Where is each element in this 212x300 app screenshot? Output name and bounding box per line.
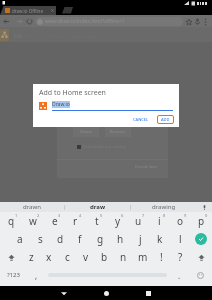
staticText: . [178,270,181,281]
button[interactable]: z [22,248,40,266]
button[interactable]: . [170,266,188,284]
button[interactable]: k [150,230,170,248]
staticText: l [179,232,182,246]
button[interactable]: Bookmark [184,17,193,26]
button[interactable]: e [44,212,65,230]
staticText: 3 [58,213,61,218]
staticText: Browser [110,129,126,134]
button[interactable]: f [70,230,90,248]
button[interactable]: Decide later [135,164,158,169]
button[interactable]: h [110,230,130,248]
button[interactable]: Recents [127,286,169,300]
staticText: b [101,250,108,264]
button[interactable]: u [128,212,149,230]
button[interactable]: Device [73,112,99,137]
staticText: p [198,214,205,228]
button[interactable]: Voice input [196,202,212,212]
staticText: h [117,232,124,246]
staticText: c [65,250,70,264]
staticText: www.draw.io/index.html?offline=1 [45,18,125,25]
button[interactable]: ?123 [0,266,27,284]
button[interactable]: j [130,230,150,248]
staticText: 4 [79,213,82,218]
staticText: 2 [37,213,40,218]
button[interactable]: c [58,248,76,266]
button[interactable]: x [40,248,58,266]
button[interactable]: Shift [0,248,22,266]
staticText: Decide later [135,164,158,169]
button[interactable]: b [95,248,114,266]
button[interactable]: Space [45,266,170,284]
button[interactable]: , [27,266,45,284]
button[interactable]: l [170,230,190,248]
button[interactable]: New tab [61,6,74,15]
button[interactable]: CANCEL [130,115,152,124]
button[interactable]: Enter [190,230,212,248]
button[interactable]: d [50,230,70,248]
button[interactable]: Browser [105,112,131,137]
staticText: CANCEL [133,117,149,122]
button[interactable]: v [76,248,95,266]
staticText: Draw.io [52,101,70,108]
staticText: o [177,214,184,228]
button[interactable]: Back [43,286,85,300]
button[interactable]: draw [65,202,130,212]
staticText: drawn [23,203,41,211]
button[interactable]: m [133,248,152,266]
button[interactable]: a [9,230,30,248]
staticText: m [138,250,148,264]
button[interactable]: ! [152,248,171,266]
button[interactable]: Forward [15,17,24,26]
button[interactable]: drawn [0,202,64,212]
staticText: draw.io Offline [12,8,43,14]
staticText: v [83,250,89,264]
button[interactable]: Emoji [188,266,212,284]
staticText: g [97,232,104,246]
staticText: y [115,214,121,228]
button[interactable]: Reload [25,17,34,26]
button[interactable]: n [114,248,133,266]
button[interactable]: ADD [157,115,174,124]
staticText: w [29,214,37,228]
button[interactable]: w [22,212,44,230]
button[interactable]: r [65,212,86,230]
button[interactable]: draw.io Offline [0,6,56,15]
button[interactable]: Backspace [190,248,212,266]
staticText: Add to Home screen [39,88,106,98]
staticText: 5 [100,213,103,218]
staticText: 6 [121,213,124,218]
button[interactable]: Voice search [193,17,202,26]
button[interactable]: q [0,212,22,230]
staticText: f [78,232,82,246]
button[interactable]: Home [85,286,127,300]
staticText: d [57,232,64,246]
button[interactable]: y [107,212,128,230]
button[interactable]: drawing [131,202,196,212]
button[interactable]: o [170,212,191,230]
button[interactable]: g [90,230,110,248]
staticText: draw [90,203,106,211]
button[interactable]: t [86,212,107,230]
staticText: u [135,214,142,228]
staticText: j [139,232,142,246]
staticText: s [38,232,43,246]
button[interactable]: ? [171,248,190,266]
button[interactable]: p [191,212,212,230]
staticText: ? [178,250,183,264]
staticText: t [95,214,99,228]
button[interactable]: www.draw.io/index.html?offline=1 [35,17,183,26]
staticText: , [35,270,38,281]
staticText: e [52,214,58,228]
staticText: Device [80,129,93,134]
staticText: a [17,232,23,246]
button[interactable]: Back [2,17,11,26]
staticText: ADD [161,117,170,122]
staticText: 7 [142,213,145,218]
staticText: 8 [163,213,166,218]
button[interactable]: i [149,212,170,230]
button[interactable]: s [30,230,50,248]
staticText: z [29,250,34,264]
button[interactable]: More options [201,17,210,26]
